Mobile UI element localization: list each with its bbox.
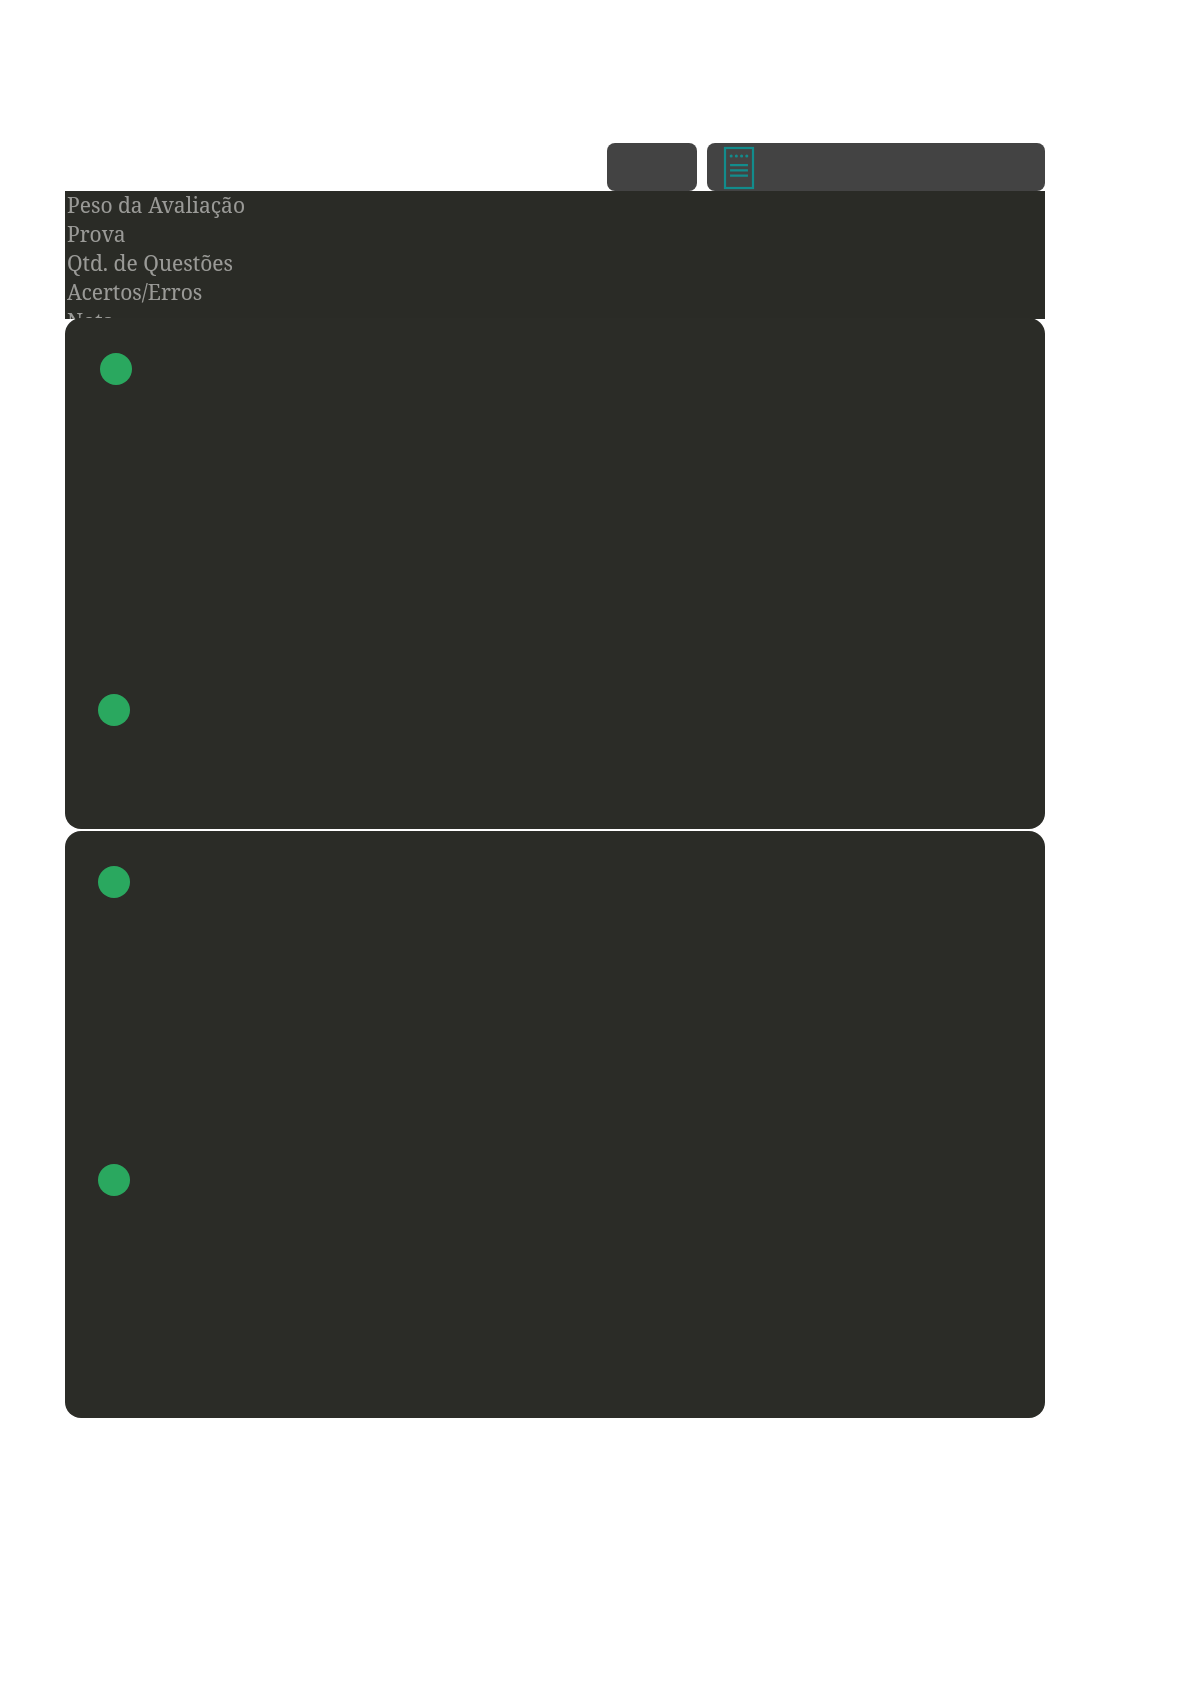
staticText: Peso da Avaliação xyxy=(67,191,245,220)
staticText: Qtd. de Questões xyxy=(67,249,234,278)
staticText: Acertos/Erros xyxy=(67,278,203,307)
button[interactable] xyxy=(65,831,1045,1418)
button[interactable] xyxy=(65,318,1045,829)
button[interactable]: Documento da avaliação xyxy=(723,146,755,190)
button[interactable]: Opções xyxy=(607,143,697,191)
staticText: Nota xyxy=(67,307,115,319)
staticText: Prova xyxy=(67,220,126,249)
button[interactable]: Documento da avaliação xyxy=(707,143,1045,191)
